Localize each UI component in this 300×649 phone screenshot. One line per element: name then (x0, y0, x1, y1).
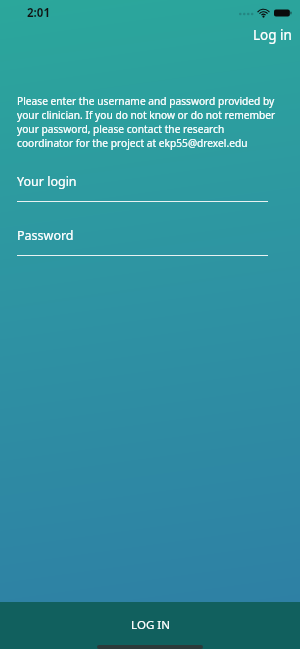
button[interactable]: Log in (245, 24, 300, 46)
button[interactable]: Your login (17, 173, 283, 202)
staticText: Log in (253, 26, 292, 44)
button[interactable]: LOG IN (0, 602, 300, 649)
staticText: 2:01 (27, 5, 50, 21)
staticText: Your login (17, 173, 77, 190)
staticText: Password (17, 227, 74, 244)
button[interactable]: Password (17, 227, 283, 256)
staticText: Please enter the username and password p… (17, 94, 283, 150)
staticText: LOG IN (131, 617, 170, 633)
